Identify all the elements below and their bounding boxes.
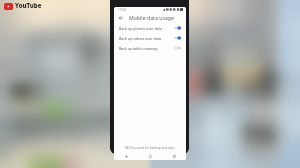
button[interactable]: Back up videos over data (114, 33, 186, 43)
staticText: Back up videos over data (119, 36, 162, 41)
button[interactable]: Back up while roaming (114, 43, 186, 53)
button[interactable]: Recent apps (162, 152, 186, 160)
staticText: Mobile data usage (129, 14, 174, 21)
button[interactable]: Home (138, 152, 162, 160)
staticText: YouTube (15, 2, 42, 10)
staticText: 11:04 (118, 8, 126, 12)
button[interactable]: Navigate up (116, 13, 125, 22)
staticText: Back up while roaming (119, 46, 158, 51)
staticText: Wi-Fi is used for backup and sync (114, 146, 186, 150)
button[interactable]: Back (114, 152, 138, 160)
button[interactable]: Back up photos over data (114, 23, 186, 33)
staticText: Back up photos over data (119, 26, 162, 31)
